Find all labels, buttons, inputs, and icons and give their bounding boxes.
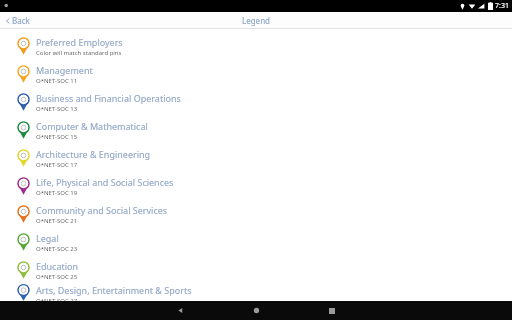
button[interactable]: Preferred Employers (0, 32, 512, 60)
staticText: Back (12, 15, 30, 26)
staticText: O*NET-SOC 13 (36, 105, 78, 113)
button[interactable]: Arts, Design, Entertainment & Sports (0, 284, 512, 301)
staticText: O*NET-SOC 23 (36, 245, 78, 253)
button[interactable]: Architecture & Engineering (0, 144, 512, 172)
button[interactable]: Back (0, 13, 35, 28)
staticText: 7:31 (495, 1, 509, 11)
staticText: Education (36, 260, 79, 272)
button[interactable]: Business and Financial Operations (0, 88, 512, 116)
staticText: Legend (242, 15, 270, 26)
staticText: O*NET-SOC 19 (36, 189, 78, 197)
button[interactable]: Legal (0, 228, 512, 256)
staticText: Business and Financial Operations (36, 92, 181, 104)
button[interactable]: Legend (236, 13, 276, 28)
staticText: Color will match standard pins (36, 49, 122, 57)
staticText: Preferred Employers (36, 36, 123, 48)
staticText: Architecture & Engineering (36, 148, 151, 160)
button[interactable]: Management (0, 60, 512, 88)
staticText: O*NET-SOC 17 (36, 161, 78, 169)
staticText: O*NET-SOC 25 (36, 273, 78, 281)
button[interactable]: Home (236, 301, 276, 320)
button[interactable]: Life, Physical and Social Sciences (0, 172, 512, 200)
staticText: O*NET-SOC 11 (36, 77, 78, 85)
staticText: Community and Social Services (36, 204, 168, 216)
staticText: Legal (36, 232, 59, 244)
button[interactable]: Community and Social Services (0, 200, 512, 228)
button[interactable]: Computer & Mathematical (0, 116, 512, 144)
staticText: O*NET-SOC 27 (36, 297, 78, 301)
staticText: O*NET-SOC 21 (36, 217, 78, 225)
staticText: Computer & Mathematical (36, 120, 148, 132)
button[interactable]: Back (160, 301, 200, 320)
button[interactable]: Recent apps (312, 301, 352, 320)
staticText: Arts, Design, Entertainment & Sports (36, 284, 192, 296)
staticText: Life, Physical and Social Sciences (36, 176, 174, 188)
staticText: O*NET-SOC 15 (36, 133, 78, 141)
staticText: Management (36, 64, 93, 76)
button[interactable]: Education (0, 256, 512, 284)
